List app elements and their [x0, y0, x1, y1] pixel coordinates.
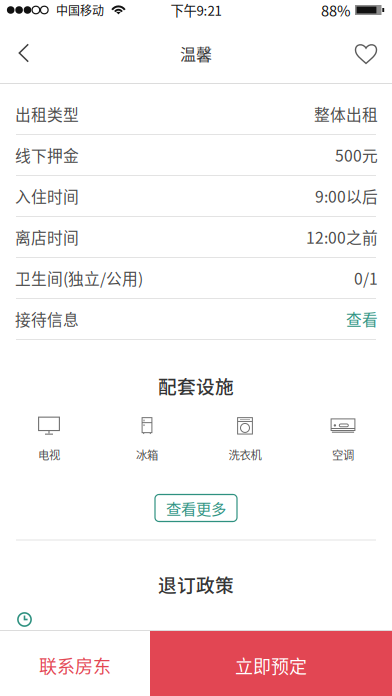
button[interactable]: 联系房东: [0, 631, 150, 696]
button[interactable]: 接待信息: [0, 299, 392, 340]
staticText: 电视: [38, 446, 60, 463]
staticText: 入住时间: [15, 185, 79, 207]
button[interactable]: 洗衣机: [196, 416, 294, 463]
staticText: 空调: [332, 446, 354, 463]
staticText: 温馨: [180, 42, 212, 65]
button[interactable]: 入住时间: [0, 176, 392, 217]
button[interactable]: 空调: [294, 416, 392, 463]
staticText: 退订政策: [158, 570, 234, 597]
button[interactable]: 电视: [0, 416, 98, 463]
staticText: 出租类型: [15, 103, 79, 125]
button[interactable]: 卫生间(独立/公用): [0, 258, 392, 299]
staticText: 查看: [346, 308, 378, 330]
staticText: 0/1: [354, 267, 378, 289]
staticText: 下午9:21: [170, 0, 221, 20]
button[interactable]: 线下押金: [0, 135, 392, 176]
button[interactable]: 立即预定: [150, 631, 392, 696]
staticText: 立即预定: [235, 652, 307, 679]
staticText: 500元: [335, 144, 378, 166]
button[interactable]: 出租类型: [0, 94, 392, 135]
button[interactable]: 冰箱: [98, 416, 196, 463]
staticText: 88%: [321, 0, 351, 21]
staticText: 中国移动: [56, 1, 104, 19]
staticText: 查看更多: [166, 497, 226, 519]
staticText: 冰箱: [136, 446, 158, 463]
button[interactable]: 查看更多: [155, 494, 237, 521]
staticText: 9:00以后: [315, 185, 378, 207]
staticText: 联系房东: [39, 652, 111, 679]
staticText: 离店时间: [15, 226, 79, 248]
staticText: 12:00之前: [306, 226, 378, 248]
staticText: 整体出租: [314, 103, 378, 125]
button[interactable]: 收藏: [340, 24, 392, 83]
staticText: 卫生间(独立/公用): [15, 267, 143, 289]
button[interactable]: 返回: [0, 24, 48, 83]
staticText: 接待信息: [15, 308, 79, 330]
staticText: 配套设施: [158, 372, 234, 399]
button[interactable]: 离店时间: [0, 217, 392, 258]
staticText: 洗衣机: [228, 446, 261, 463]
staticText: 线下押金: [15, 144, 79, 166]
